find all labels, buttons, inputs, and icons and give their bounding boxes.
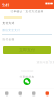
button[interactable]: 购物车 <box>27 88 40 100</box>
button[interactable]: Share to WeChat <box>23 78 30 85</box>
staticText: 微信安全支付 <box>2 28 20 32</box>
button[interactable]: 微信安全支付 <box>2 28 20 32</box>
staticText: 订单确认 · 支付方式选择 <box>10 9 43 13</box>
staticText: 遇到问题?联系客服 <box>36 61 54 64</box>
button[interactable]: 分类 <box>13 88 27 100</box>
staticText: 分类 <box>19 95 21 97</box>
button[interactable]: 立即支付 <box>3 46 51 54</box>
staticText: 我的 <box>46 95 48 97</box>
staticText: 支付方式 <box>3 21 15 25</box>
staticText: 购物车 <box>32 95 35 97</box>
button[interactable]: 首页 <box>0 88 13 100</box>
staticText: 分享给好友 <box>19 75 34 78</box>
button[interactable]: 我的 <box>40 88 54 100</box>
staticText: 应付金额 <box>2 38 14 41</box>
button[interactable]: 遇到问题?联系客服 <box>36 61 54 64</box>
staticText: 9:41 <box>2 2 9 7</box>
staticText: 立即支付 <box>19 47 35 52</box>
